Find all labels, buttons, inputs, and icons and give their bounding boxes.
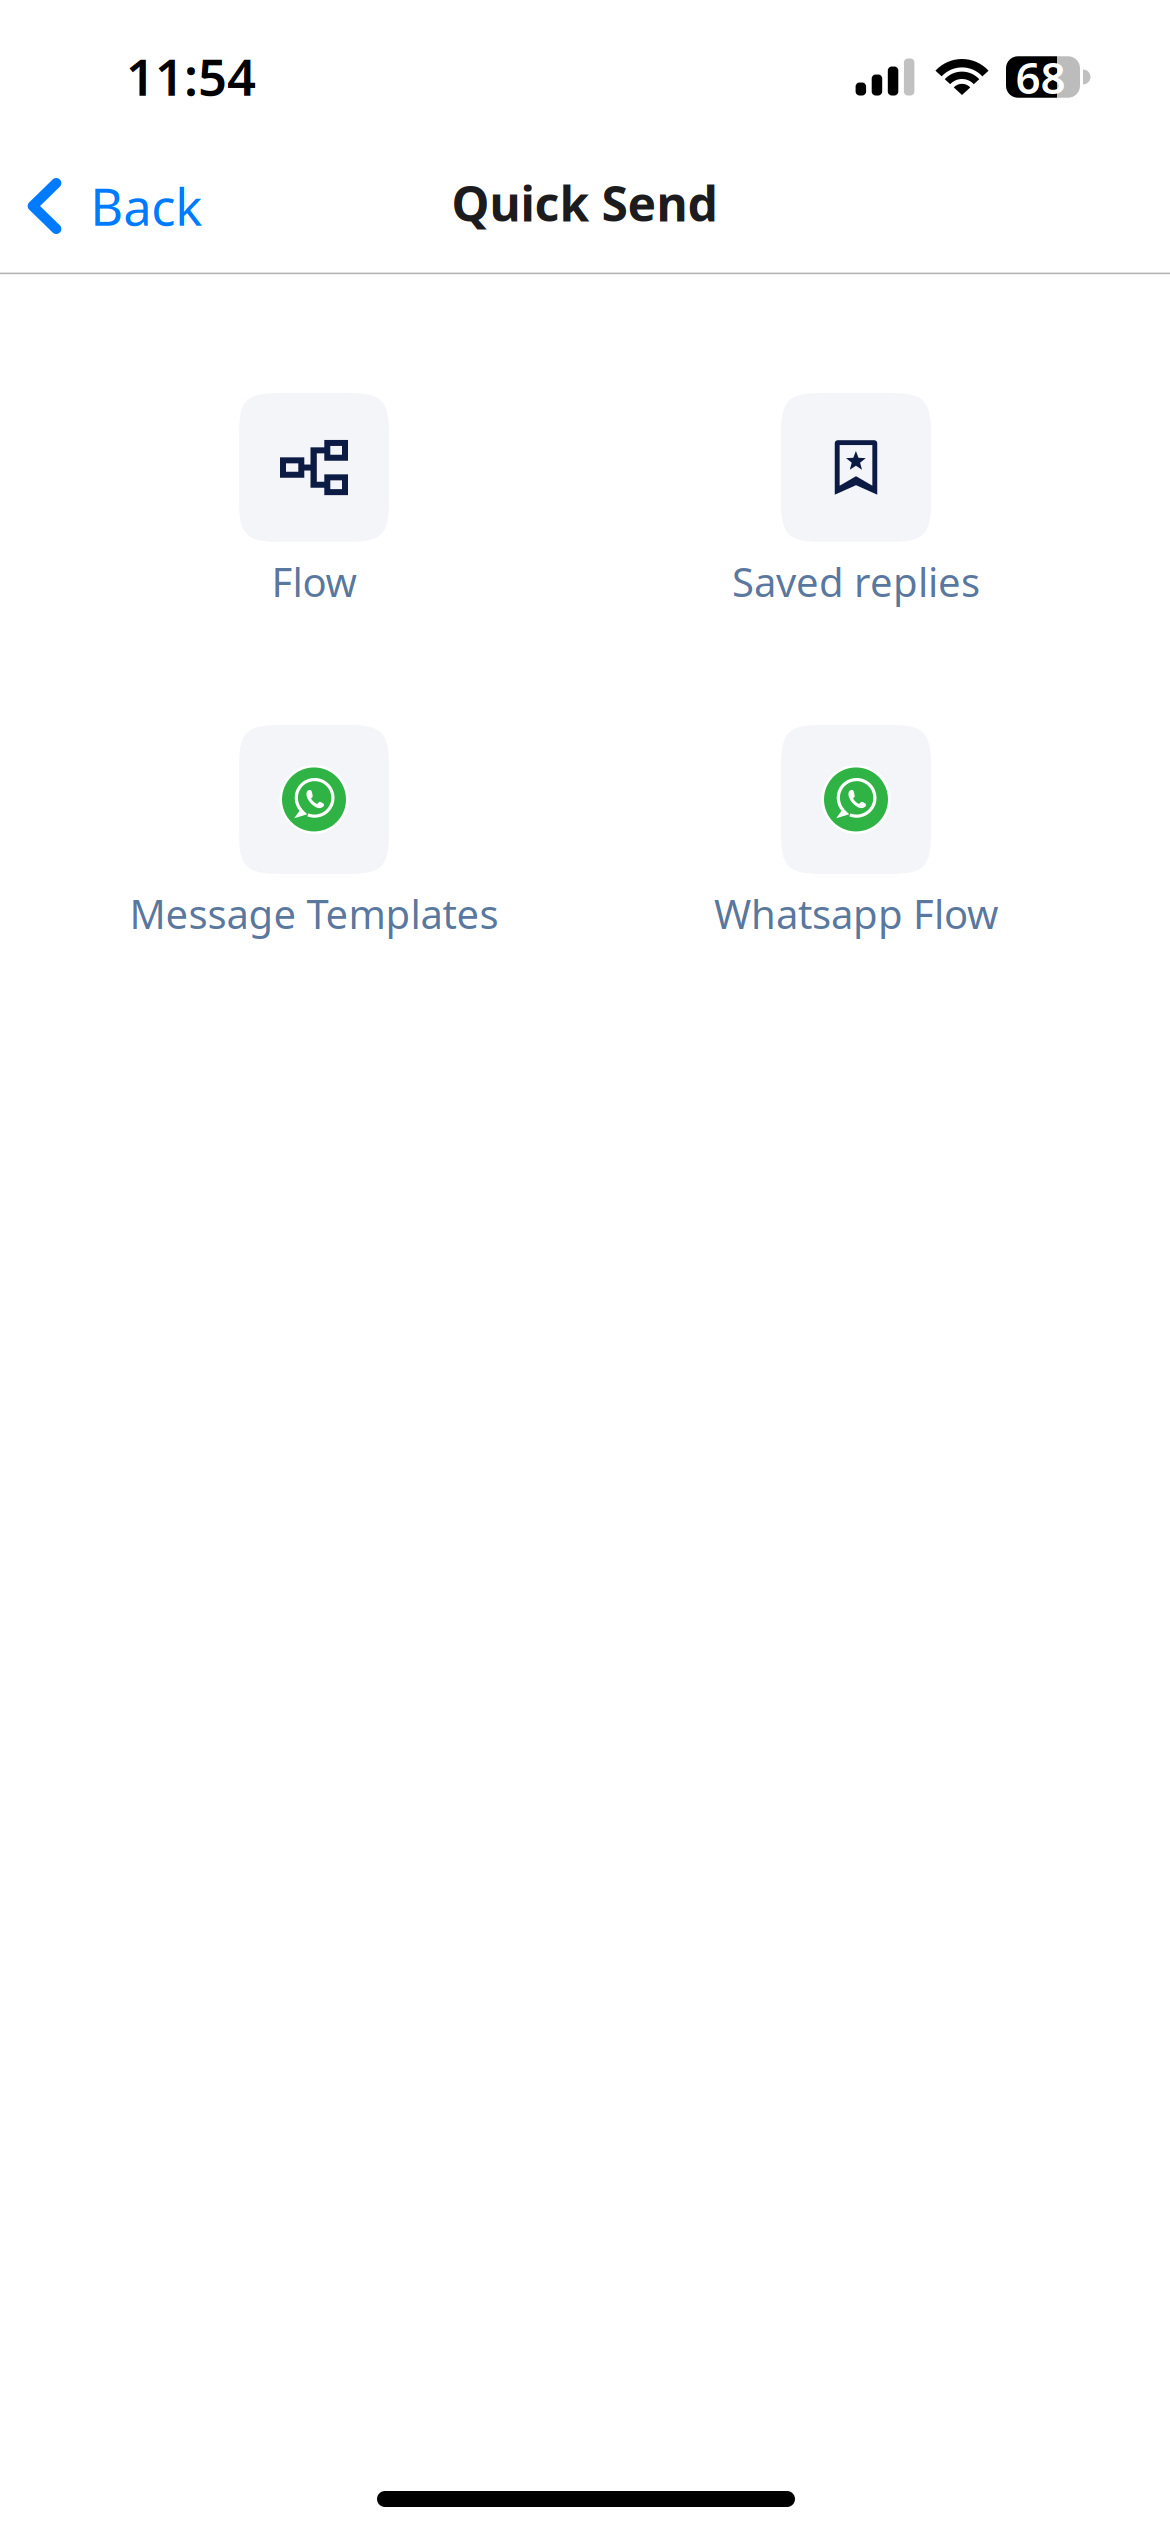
staticText: Whatsapp Flow bbox=[714, 887, 998, 940]
staticText: Back bbox=[90, 172, 202, 240]
button[interactable]: Flow bbox=[239, 393, 389, 610]
staticText: 68 bbox=[1015, 48, 1065, 106]
button[interactable]: Back bbox=[2, 156, 226, 256]
staticText: Message Templates bbox=[129, 887, 498, 940]
staticText: Saved replies bbox=[732, 555, 980, 608]
staticText: Quick Send bbox=[451, 171, 717, 235]
staticText: 11:54 bbox=[126, 42, 256, 110]
staticText: Flow bbox=[271, 555, 356, 608]
button[interactable]: Message Templates bbox=[129, 725, 498, 942]
button[interactable]: Saved replies bbox=[732, 393, 980, 610]
button[interactable]: Whatsapp Flow bbox=[714, 725, 998, 942]
